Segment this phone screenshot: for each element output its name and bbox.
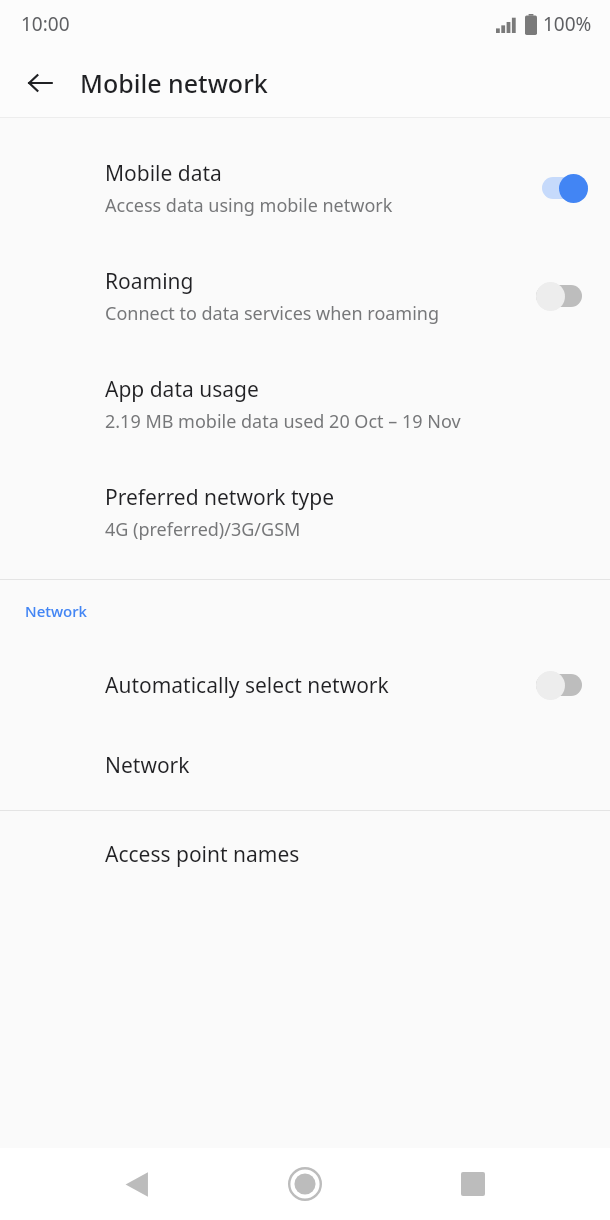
button[interactable]: Back [12,55,68,111]
staticText: App data usage [105,375,259,404]
button[interactable]: Home [274,1153,336,1215]
staticText: 100% [543,11,592,37]
button[interactable]: Preferred network type [0,458,610,566]
button[interactable]: Back [106,1153,168,1215]
button[interactable]: Toggle on [536,171,588,205]
staticText: Roaming [105,267,194,296]
staticText: 4G (preferred)/3G/GSM [105,517,301,542]
button[interactable]: Toggle off [536,668,588,702]
staticText: Network [25,601,87,621]
button[interactable]: App data usage [0,350,610,458]
staticText: Access data using mobile network [105,193,393,218]
staticText: Mobile network [80,66,268,100]
staticText: 10:00 [21,11,70,37]
staticText: Mobile data [105,159,222,188]
button[interactable]: Network [0,725,610,805]
button[interactable]: Recent apps [442,1153,504,1215]
button[interactable]: Toggle off [536,279,588,313]
button[interactable]: Roaming [0,242,610,350]
staticText: Access point names [105,840,300,869]
staticText: Preferred network type [105,483,335,512]
button[interactable]: Automatically select network [0,645,610,725]
staticText: Connect to data services when roaming [105,301,440,326]
staticText: Network [105,751,190,780]
staticText: Automatically select network [105,671,389,700]
button[interactable]: Mobile data [0,134,610,242]
staticText: 2.19 MB mobile data used 20 Oct – 19 Nov [105,409,461,434]
button[interactable]: Access point names [0,811,610,897]
